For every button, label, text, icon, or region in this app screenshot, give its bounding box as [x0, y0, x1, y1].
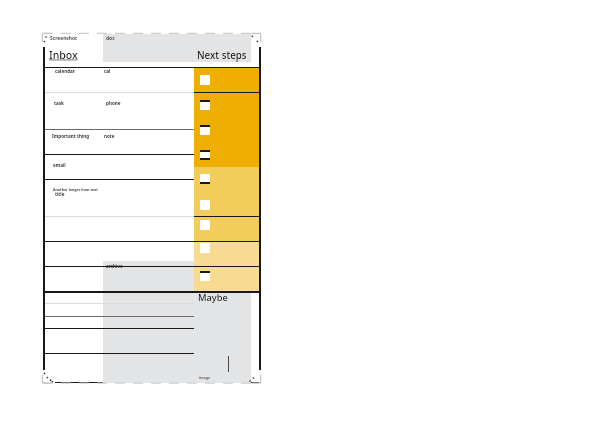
button[interactable]: Task checkbox: [200, 125, 210, 135]
staticText: email: [53, 162, 66, 168]
staticText: note: [104, 133, 115, 139]
staticText: doc: [106, 35, 115, 42]
staticText: image: [199, 375, 211, 380]
staticText: Important thing: [52, 133, 90, 139]
button[interactable]: Task checkbox: [200, 150, 210, 160]
button[interactable]: Task checkbox: [200, 174, 210, 184]
button[interactable]: Inbox: [49, 48, 78, 62]
button[interactable]: Maybe: [198, 291, 228, 304]
staticText: Screenshot: [50, 35, 78, 42]
staticText: calendar: [55, 68, 75, 74]
button[interactable]: Next steps: [197, 49, 247, 62]
staticText: phone: [106, 100, 121, 106]
staticText: Another longer item text: [53, 187, 98, 192]
staticText: title: [55, 191, 65, 197]
button[interactable]: Task checkbox: [200, 100, 210, 110]
staticText: cal: [104, 68, 111, 74]
button[interactable]: Task checkbox: [200, 271, 210, 281]
staticText: archive: [106, 263, 123, 269]
staticText: task: [54, 100, 64, 106]
